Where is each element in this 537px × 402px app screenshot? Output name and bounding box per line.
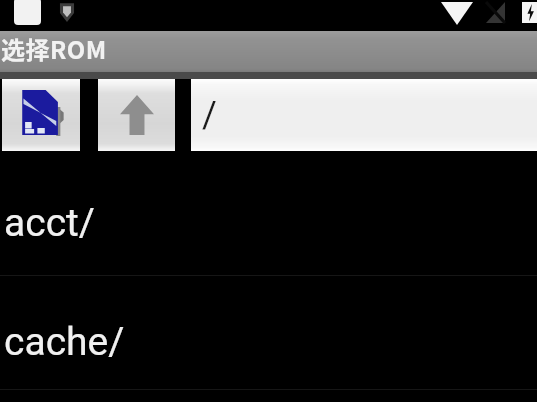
staticText: / — [202, 94, 217, 136]
button[interactable]: Up one level — [98, 79, 175, 151]
staticText: cache/ — [4, 319, 125, 365]
button[interactable]: acct/ — [0, 152, 537, 275]
button[interactable]: Storage — [2, 79, 80, 151]
button[interactable]: cache/ — [0, 276, 537, 389]
staticText: 选择ROM — [1, 31, 107, 66]
staticText: acct/ — [4, 200, 95, 246]
button[interactable]: / — [191, 79, 537, 151]
